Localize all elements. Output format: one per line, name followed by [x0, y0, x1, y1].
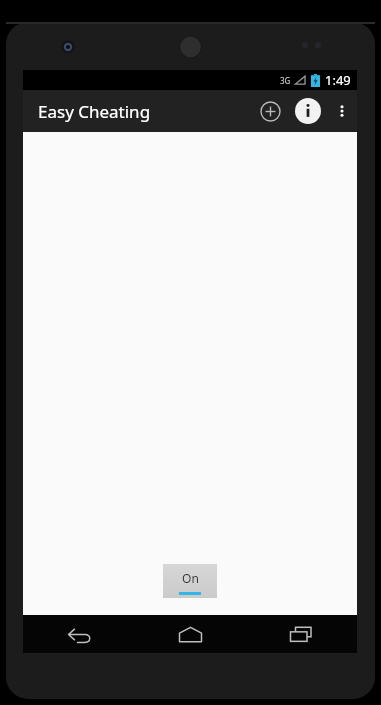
staticText: 1:49 [325, 71, 351, 89]
button[interactable]: Back [23, 615, 135, 653]
button[interactable]: More options [327, 90, 357, 132]
button[interactable]: Recent apps [246, 615, 357, 653]
staticText: On [182, 570, 199, 586]
staticText: 3G [280, 75, 291, 86]
button[interactable]: Home [135, 615, 246, 653]
button[interactable]: On [163, 564, 217, 598]
button[interactable]: Info [289, 90, 327, 132]
button[interactable]: Add [251, 90, 289, 132]
staticText: Easy Cheating [38, 100, 151, 123]
